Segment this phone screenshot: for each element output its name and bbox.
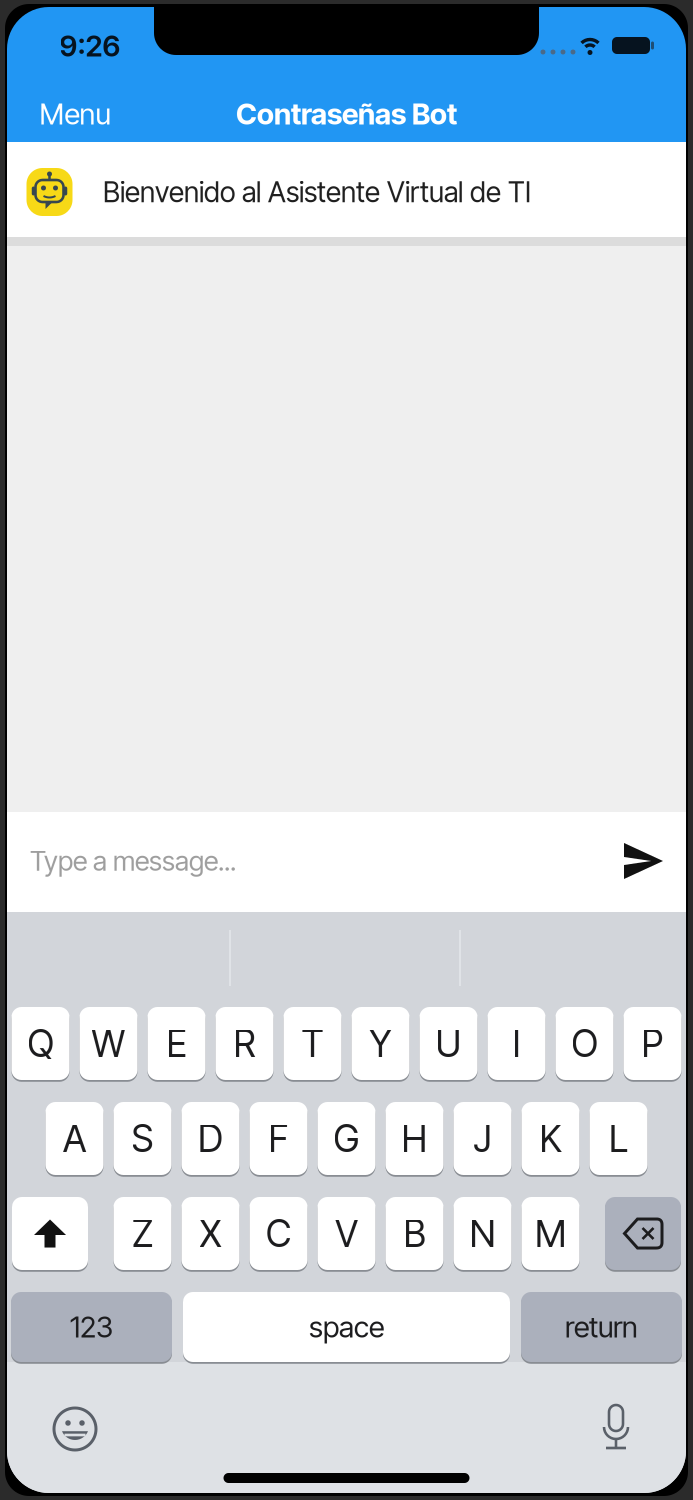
button[interactable]: H [385, 1101, 443, 1176]
staticText: B [403, 1211, 425, 1256]
button[interactable]: B [385, 1196, 443, 1271]
button[interactable] [12, 1196, 88, 1271]
button[interactable]: 123 [11, 1291, 172, 1363]
staticText: J [473, 1116, 491, 1161]
button[interactable]: G [317, 1101, 375, 1176]
staticText: E [166, 1021, 186, 1066]
button[interactable]: J [453, 1101, 511, 1176]
button[interactable]: C [249, 1196, 307, 1271]
button[interactable]: F [249, 1101, 307, 1176]
button[interactable]: S [113, 1101, 171, 1176]
button[interactable]: Q [11, 1006, 69, 1081]
staticText: L [609, 1116, 628, 1161]
staticText: V [335, 1211, 358, 1256]
button[interactable]: M [521, 1196, 579, 1271]
button[interactable] [622, 842, 664, 880]
button[interactable]: E [147, 1006, 205, 1081]
staticText: Type a message... [30, 845, 236, 877]
button[interactable]: O [555, 1006, 613, 1081]
staticText: M [535, 1211, 566, 1256]
staticText: space [309, 1309, 384, 1345]
staticText: N [469, 1211, 495, 1256]
button[interactable]: N [453, 1196, 511, 1271]
button[interactable]: W [79, 1006, 137, 1081]
staticText: I [512, 1021, 520, 1066]
staticText: A [63, 1116, 86, 1161]
button[interactable]: space [183, 1291, 510, 1363]
button[interactable]: I [487, 1006, 545, 1081]
staticText: P [641, 1021, 663, 1066]
staticText: G [333, 1116, 359, 1161]
button[interactable]: Z [113, 1196, 171, 1271]
staticText: F [268, 1116, 288, 1161]
staticText: C [266, 1211, 291, 1256]
staticText: U [435, 1021, 461, 1066]
button[interactable]: T [283, 1006, 341, 1081]
button[interactable]: P [623, 1006, 681, 1081]
staticText: 9:26 [59, 28, 120, 64]
button[interactable] [601, 1403, 631, 1455]
button[interactable]: L [589, 1101, 647, 1176]
staticText: O [571, 1021, 597, 1066]
button[interactable] [53, 1407, 97, 1451]
button[interactable]: X [181, 1196, 239, 1271]
button[interactable]: R [215, 1006, 273, 1081]
staticText: Contraseñas Bot [236, 96, 457, 132]
staticText: K [539, 1116, 561, 1161]
staticText: Z [132, 1211, 153, 1256]
staticText: Menu [39, 96, 110, 132]
button[interactable] [605, 1196, 681, 1271]
staticText: return [565, 1309, 638, 1345]
button[interactable]: U [419, 1006, 477, 1081]
staticText: T [301, 1021, 323, 1066]
button[interactable]: D [181, 1101, 239, 1176]
staticText: Bienvenido al Asistente Virtual de TI [103, 175, 531, 209]
staticText: H [401, 1116, 427, 1161]
staticText: D [198, 1116, 223, 1161]
button[interactable]: K [521, 1101, 579, 1176]
button[interactable]: A [45, 1101, 103, 1176]
button[interactable]: Y [351, 1006, 409, 1081]
staticText: S [131, 1116, 153, 1161]
button[interactable]: Menu [39, 96, 110, 132]
button[interactable]: return [521, 1291, 682, 1363]
staticText: X [199, 1211, 221, 1256]
staticText: Y [369, 1021, 392, 1066]
button[interactable]: Type a message... [30, 811, 616, 911]
staticText: 123 [70, 1309, 113, 1345]
staticText: R [233, 1021, 255, 1066]
button[interactable]: V [317, 1196, 375, 1271]
staticText: Q [27, 1021, 53, 1066]
staticText: W [91, 1021, 125, 1066]
